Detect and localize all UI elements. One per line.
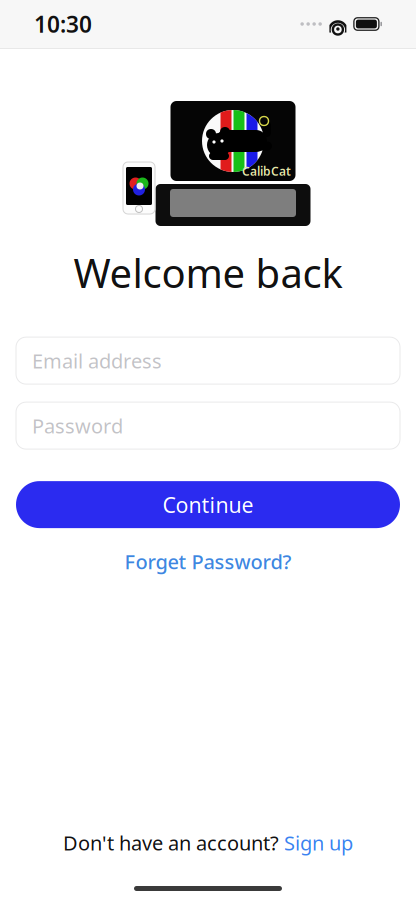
button[interactable]: Continue (16, 481, 400, 528)
staticText: Email address (32, 347, 162, 374)
staticText: Welcome back (73, 246, 342, 299)
staticText: Forget Password? (124, 548, 291, 575)
staticText: 10:30 (34, 9, 92, 39)
staticText: CalibCat (242, 163, 291, 179)
staticText: Password (32, 412, 123, 439)
button[interactable]: Sign up (284, 829, 353, 856)
staticText: Sign up (284, 829, 353, 856)
staticText: Don't have an account? (63, 829, 279, 856)
staticText: Continue (162, 490, 253, 519)
button[interactable]: Forget Password? (110, 542, 305, 581)
